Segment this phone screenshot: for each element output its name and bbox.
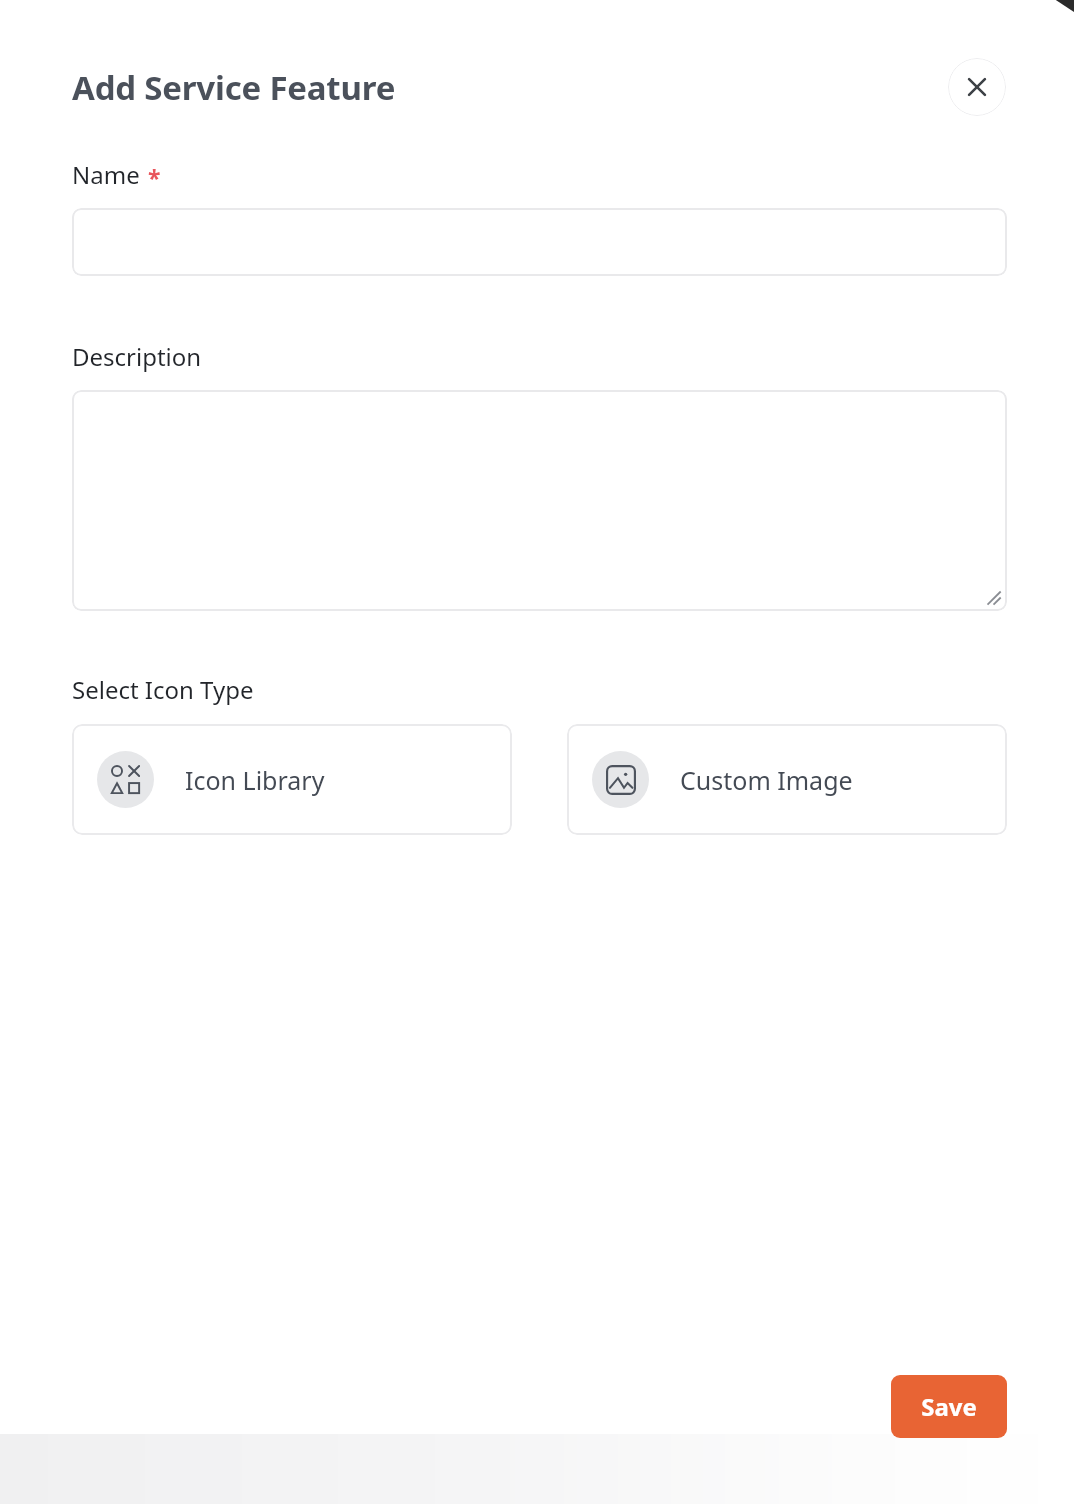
staticText: Select Icon Type — [72, 673, 254, 706]
staticText: Description — [72, 340, 202, 373]
staticText: Name — [72, 158, 140, 191]
staticText: Icon Library — [185, 763, 325, 797]
staticText: * — [148, 162, 161, 193]
staticText: Add Service Feature — [72, 65, 396, 110]
button[interactable] — [72, 390, 1007, 611]
button[interactable]: Custom Image — [567, 724, 1007, 835]
staticText: Custom Image — [680, 763, 853, 797]
button[interactable]: Close — [948, 58, 1006, 116]
button[interactable]: Save — [891, 1375, 1007, 1438]
staticText: Save — [921, 1390, 977, 1423]
button[interactable]: Icon Library — [72, 724, 512, 835]
button[interactable] — [72, 208, 1007, 276]
